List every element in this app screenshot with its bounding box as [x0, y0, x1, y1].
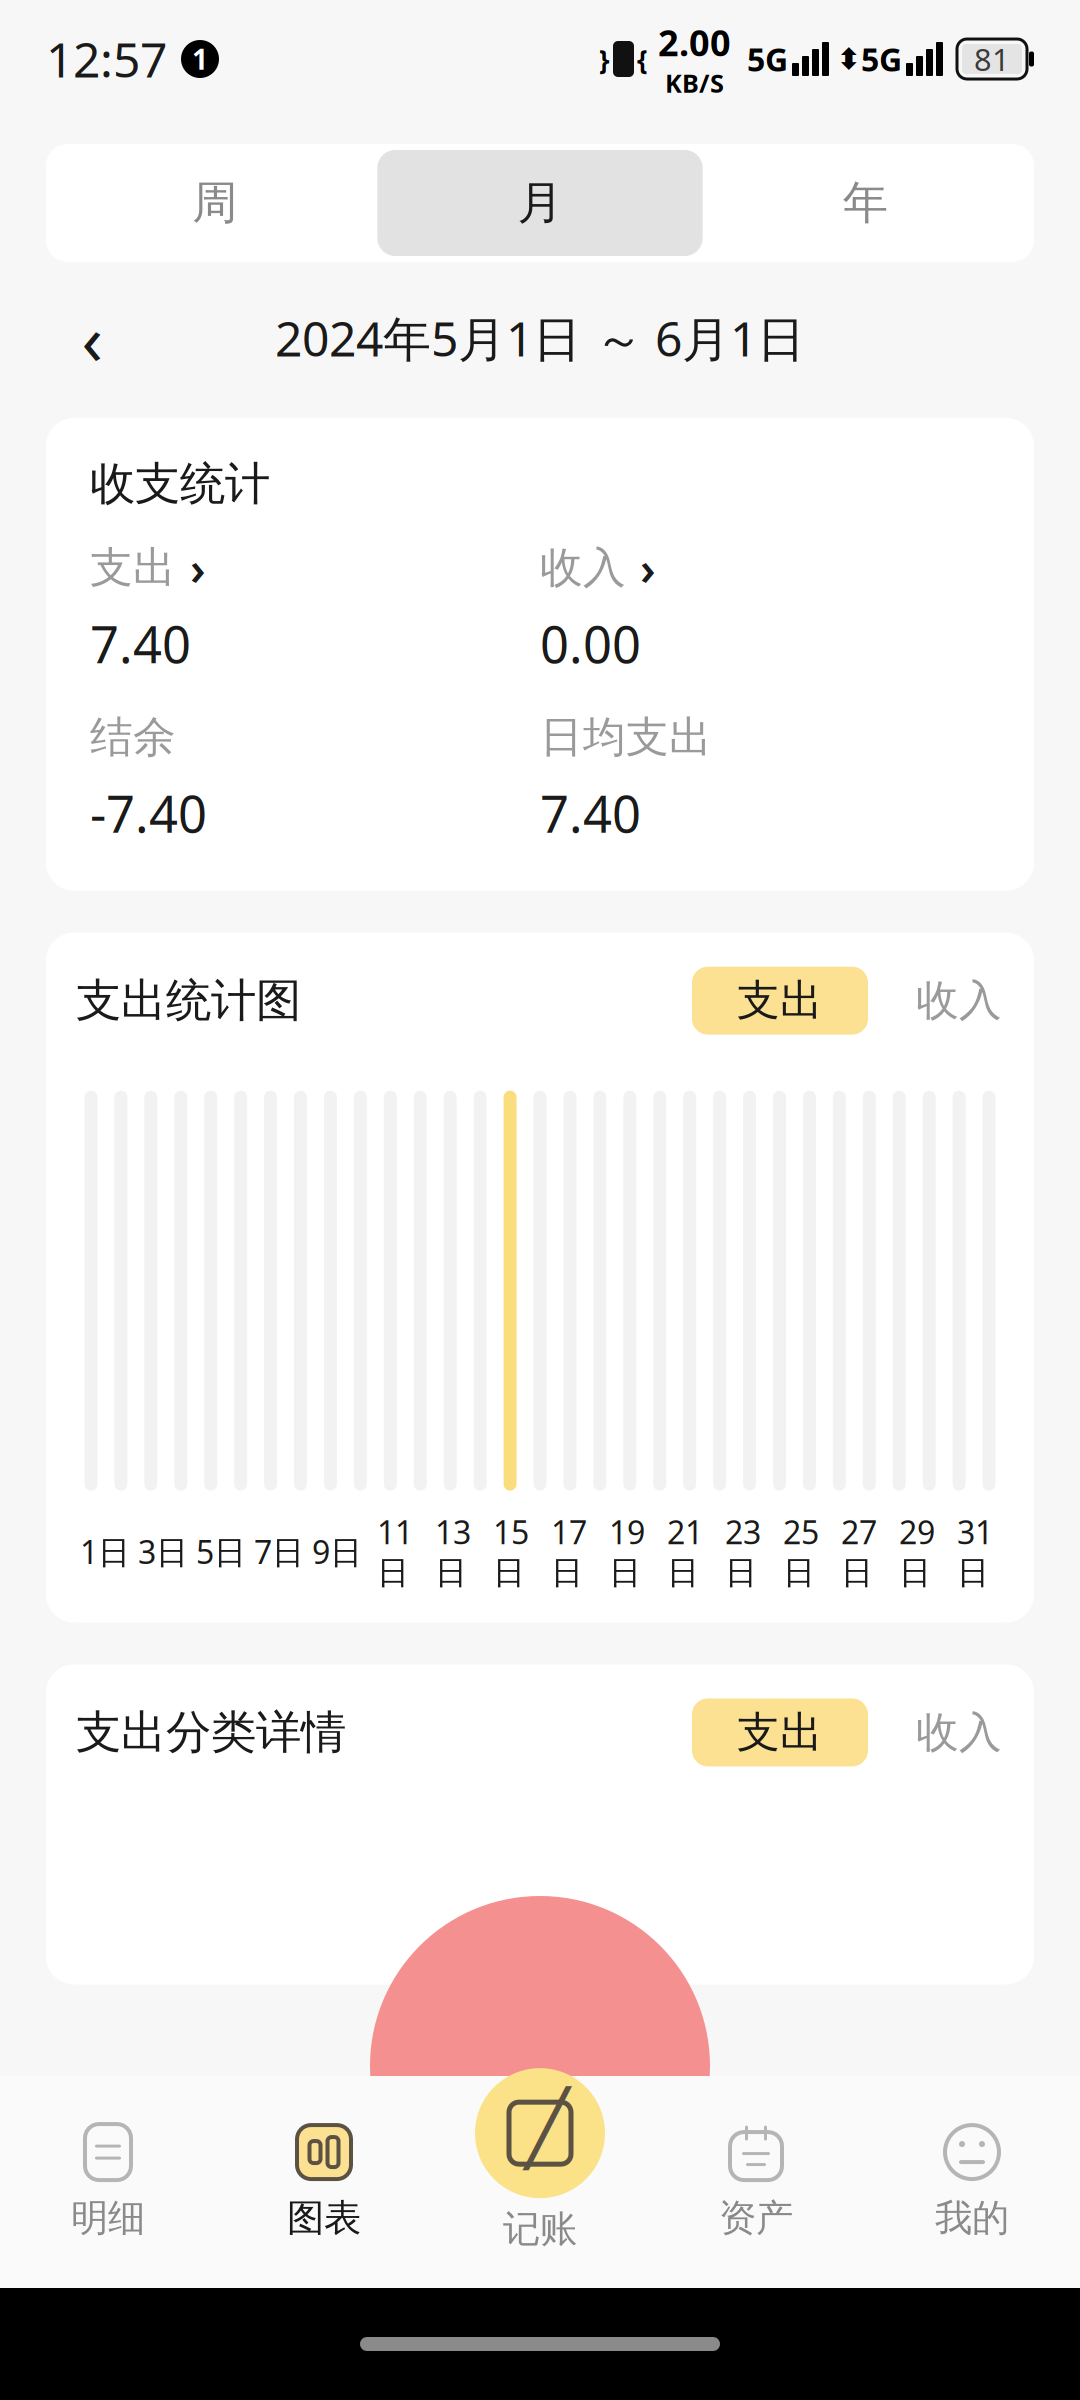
- staticText: 月: [517, 175, 562, 231]
- button[interactable]: 收入: [914, 1698, 1004, 1766]
- staticText: 25日: [783, 1511, 819, 1592]
- button[interactable]: 收入: [914, 967, 1004, 1035]
- staticText: ⬍: [836, 42, 861, 76]
- staticText: 23日: [725, 1511, 761, 1592]
- staticText: 支出分类详情: [76, 1705, 346, 1760]
- staticText: ‹: [81, 292, 102, 384]
- staticText: 9日: [312, 1530, 362, 1573]
- staticText: 13日: [435, 1511, 471, 1592]
- button[interactable]: 支出: [692, 967, 868, 1035]
- staticText: ›: [640, 538, 656, 598]
- staticText: 81: [974, 39, 1010, 79]
- staticText: 周: [192, 175, 237, 231]
- staticText: 7.40: [90, 610, 191, 677]
- staticText: 我的: [935, 2195, 1009, 2241]
- button[interactable]: 周: [52, 150, 377, 256]
- staticText: {: [637, 41, 648, 77]
- button[interactable]: 支出: [692, 1698, 868, 1766]
- staticText: 27日: [841, 1511, 877, 1592]
- button[interactable]: 上一个月: [46, 292, 138, 384]
- staticText: 收支统计: [90, 456, 270, 512]
- staticText: 5G: [747, 38, 788, 80]
- staticText: 5G: [861, 38, 902, 80]
- staticText: 结余: [90, 711, 176, 763]
- staticText: 1日: [80, 1530, 130, 1573]
- staticText: 7日: [254, 1530, 304, 1573]
- staticText: ╱: [525, 2087, 568, 2169]
- staticText: 31日: [957, 1511, 993, 1592]
- staticText: 年: [843, 175, 888, 231]
- staticText: }: [599, 41, 610, 77]
- staticText: 收入: [916, 1706, 1002, 1759]
- staticText: -7.40: [90, 779, 207, 847]
- staticText: 29日: [899, 1511, 935, 1592]
- staticText: 支出: [737, 974, 823, 1027]
- staticText: 2.00: [658, 18, 731, 66]
- button[interactable]: 明细: [0, 2076, 216, 2288]
- staticText: 2024年5月1日 ～ 6月1日: [275, 306, 805, 370]
- staticText: 明细: [71, 2195, 145, 2241]
- button[interactable]: 月: [377, 150, 703, 256]
- staticText: 3日: [138, 1530, 188, 1573]
- staticText: 5日: [196, 1530, 246, 1573]
- staticText: KB/S: [665, 66, 724, 100]
- button[interactable]: 图表: [216, 2076, 432, 2288]
- staticText: 12:57: [46, 27, 167, 91]
- staticText: 17日: [551, 1511, 587, 1592]
- button[interactable]: 年: [703, 150, 1028, 256]
- staticText: 收入: [916, 974, 1002, 1027]
- button[interactable]: 收入: [540, 538, 990, 677]
- staticText: 19日: [609, 1511, 645, 1592]
- staticText: 支出: [737, 1706, 823, 1759]
- staticText: 支出统计图: [76, 973, 301, 1028]
- button[interactable]: 资产: [648, 2076, 864, 2288]
- staticText: 7.40: [540, 779, 641, 847]
- button[interactable]: 记账: [475, 2068, 605, 2198]
- staticText: 收入: [540, 542, 626, 594]
- button[interactable]: 我的: [864, 2076, 1080, 2288]
- staticText: ›: [190, 538, 206, 598]
- staticText: 记账: [503, 2206, 577, 2252]
- button[interactable]: 支出: [90, 538, 540, 677]
- staticText: 0.00: [540, 610, 641, 677]
- staticText: 11日: [377, 1511, 413, 1592]
- staticText: 图表: [287, 2195, 361, 2241]
- staticText: 15日: [493, 1511, 529, 1592]
- staticText: 日均支出: [540, 711, 712, 763]
- staticText: 1: [192, 40, 208, 78]
- staticText: 资产: [719, 2195, 793, 2241]
- staticText: 21日: [667, 1511, 703, 1592]
- staticText: 支出: [90, 542, 176, 594]
